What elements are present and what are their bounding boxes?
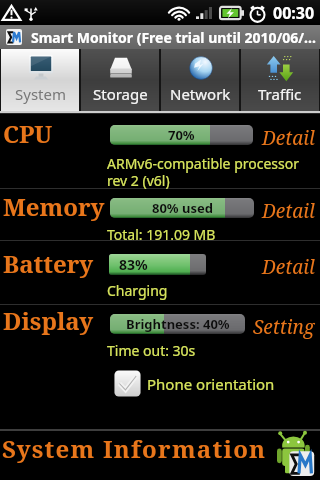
staticText: Detail (262, 125, 315, 151)
staticText: Brightness: 40% (126, 315, 230, 333)
button[interactable]: Network (161, 49, 239, 111)
button[interactable]: Setting (253, 314, 315, 340)
staticText: System Information (2, 432, 267, 465)
staticText: Detail (262, 198, 315, 224)
button[interactable]: Detail (262, 125, 315, 151)
button[interactable]: Storage (81, 49, 159, 111)
staticText: Setting (253, 314, 315, 340)
button[interactable]: Phone orientation (113, 369, 275, 398)
staticText: Battery (3, 247, 94, 280)
staticText: Phone orientation (147, 374, 275, 394)
button[interactable]: System (1, 49, 79, 111)
button[interactable]: Detail (262, 254, 315, 280)
staticText: Time out: 30s (107, 341, 196, 360)
staticText: System (15, 84, 66, 104)
staticText: ARMv6-compatible processor (107, 154, 300, 173)
staticText: Display (3, 304, 94, 337)
staticText: Smart Monitor (Free trial until 2010/06/… (31, 28, 316, 47)
staticText: rev 2 (v6l) (107, 171, 170, 190)
staticText: Traffic (258, 84, 302, 104)
staticText: 83% (119, 255, 148, 274)
staticText: Detail (262, 254, 315, 280)
staticText: 00:30 (273, 2, 315, 24)
button[interactable]: Traffic (241, 49, 319, 111)
staticText: Total: 191.09 MB (107, 225, 216, 244)
staticText: Storage (93, 84, 148, 104)
staticText: 80% used (152, 199, 213, 217)
button[interactable]: Detail (262, 198, 315, 224)
staticText: CPU (3, 117, 53, 150)
staticText: 70% (168, 126, 195, 144)
staticText: Charging (107, 281, 168, 300)
staticText: Network (170, 84, 231, 104)
staticText: Memory (3, 190, 105, 223)
